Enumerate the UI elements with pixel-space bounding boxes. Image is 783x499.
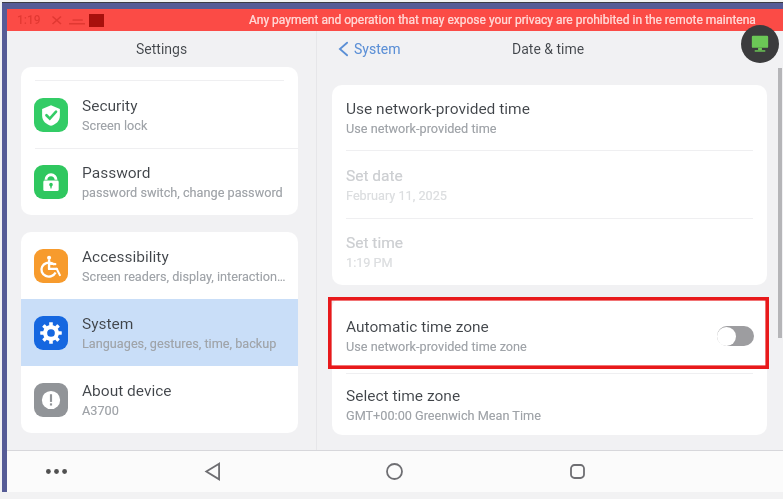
staticText: Use network-provided time — [346, 121, 497, 136]
staticText: Any payment and operation that may expos… — [249, 13, 756, 27]
button[interactable]: System — [317, 36, 411, 62]
button[interactable]: Automatic time zone toggle — [717, 326, 754, 346]
staticText: Languages, gestures, time, backup — [82, 336, 277, 351]
staticText: Use network-provided time zone — [346, 339, 527, 354]
staticText: Screen readers, display, interaction… — [82, 269, 286, 284]
staticText: System — [354, 41, 401, 57]
staticText: Select time zone — [346, 387, 461, 405]
staticText: Settings — [136, 41, 188, 57]
staticText: About device — [82, 382, 172, 400]
button[interactable]: Select time zone — [332, 374, 767, 435]
staticText: password switch, change password — [82, 185, 283, 200]
button[interactable]: Accessibility — [21, 232, 298, 299]
button[interactable]: Back — [188, 450, 238, 492]
button[interactable]: Recent apps — [552, 450, 602, 492]
staticText: Use network-provided time — [346, 100, 530, 118]
button[interactable]: Set time — [332, 219, 767, 285]
button[interactable]: Home — [369, 450, 419, 492]
staticText: Date & time — [512, 41, 585, 57]
staticText: Security — [82, 97, 138, 115]
staticText: Set time — [346, 234, 403, 252]
staticText: 1:19 PM — [346, 255, 393, 270]
button[interactable]: Remote control session — [741, 25, 779, 63]
staticText: Password — [82, 164, 151, 182]
staticText: GMT+00:00 Greenwich Mean Time — [346, 408, 541, 423]
staticText: Set date — [346, 167, 403, 185]
staticText: 1:19 — [17, 13, 41, 27]
staticText: Screen lock — [82, 118, 148, 133]
staticText: System — [82, 315, 134, 333]
button[interactable]: Automatic time zone — [332, 298, 767, 373]
staticText: February 11, 2025 — [346, 188, 447, 203]
button[interactable]: Use network-provided time — [332, 85, 767, 150]
button[interactable]: System — [21, 299, 298, 366]
button[interactable]: Password — [21, 149, 298, 215]
button[interactable]: About device — [21, 366, 298, 433]
staticText: Accessibility — [82, 248, 169, 266]
staticText: Automatic time zone — [346, 318, 489, 336]
button[interactable]: Set date — [332, 151, 767, 218]
staticText: A3700 — [82, 403, 119, 418]
button[interactable]: More options — [28, 450, 84, 492]
button[interactable]: Security — [21, 81, 298, 148]
